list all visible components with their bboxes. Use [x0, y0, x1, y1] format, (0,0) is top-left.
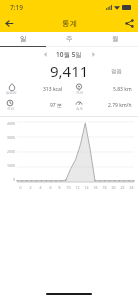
button[interactable]: Next day — [87, 48, 99, 60]
staticText: 5.83 km — [113, 86, 132, 93]
staticText: 20 — [111, 185, 116, 190]
button[interactable]: 칼로리 — [0, 81, 69, 97]
staticText: 4000 — [7, 121, 16, 126]
staticText: 14 — [84, 185, 89, 190]
staticText: 12 — [75, 185, 80, 190]
staticText: 걸음 — [111, 68, 122, 75]
staticText: 속도 — [76, 107, 83, 111]
staticText: 8 — [58, 185, 61, 190]
staticText: 313 kcal — [43, 86, 63, 93]
staticText: 6 — [49, 185, 52, 190]
staticText: 18 — [102, 185, 107, 190]
button[interactable]: 주 — [46, 32, 92, 46]
staticText: 10월 5일 — [56, 50, 82, 59]
staticText: 통계 — [62, 19, 77, 28]
staticText: 3000 — [7, 135, 16, 140]
staticText: 거리 — [76, 91, 83, 95]
staticText: 주 — [66, 35, 73, 43]
staticText: 0 — [13, 177, 16, 182]
staticText: 9,411 — [50, 61, 89, 81]
staticText: 월 — [112, 35, 119, 43]
button[interactable]: 속도 — [69, 97, 138, 113]
staticText: 2 — [29, 185, 32, 190]
button[interactable]: 일 — [0, 32, 46, 46]
staticText: 97 분 — [50, 102, 63, 109]
staticText: 7:19 — [10, 3, 23, 12]
button[interactable]: 시간 — [0, 97, 69, 113]
staticText: 10 — [66, 185, 71, 190]
staticText: 22 — [120, 185, 125, 190]
staticText: 칼로리 — [6, 91, 17, 95]
staticText: 2.79 km/h — [108, 102, 132, 109]
staticText: 1000 — [7, 163, 16, 168]
button[interactable]: Previous day — [39, 48, 51, 60]
staticText: 2000 — [7, 149, 16, 154]
button[interactable]: Back — [0, 14, 18, 32]
button[interactable]: 월 — [92, 32, 138, 46]
staticText: 4 — [39, 185, 42, 190]
staticText: 시간 — [7, 107, 14, 111]
staticText: 일 — [20, 35, 27, 43]
button[interactable]: Share — [120, 14, 138, 32]
button[interactable]: 거리 — [69, 81, 138, 97]
staticText: 0 — [19, 185, 22, 190]
staticText: 16 — [93, 185, 98, 190]
staticText: 24 — [129, 185, 134, 190]
